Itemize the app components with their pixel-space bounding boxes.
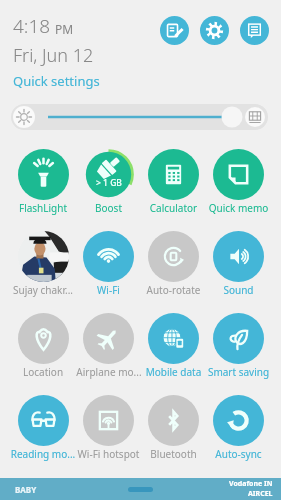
button[interactable]: Airplane mo... (76, 311, 141, 379)
button[interactable]: Mobile data (141, 311, 206, 379)
button[interactable]: Reading mo... (10, 393, 76, 461)
staticText: > 1 GB (96, 177, 122, 189)
staticText: Calculator (141, 201, 206, 215)
staticText: Reading mo... (10, 447, 76, 461)
staticText: Vodafone IN (229, 479, 273, 489)
button[interactable]: Wi-Fi (76, 229, 141, 297)
button[interactable]: Notifications (240, 16, 269, 45)
staticText: Location (10, 365, 76, 379)
button[interactable]: Sound (206, 229, 271, 297)
button[interactable]: Calculator (141, 147, 206, 215)
button[interactable]: Auto-sync (206, 393, 271, 461)
staticText: Sujay chakr... (10, 283, 76, 297)
staticText: Mobile data (141, 365, 206, 379)
button[interactable]: > 1 GB (76, 147, 141, 215)
staticText: Boost (76, 201, 141, 215)
button[interactable]: Brightness slider (11, 104, 268, 130)
button[interactable]: FlashLight (10, 147, 76, 215)
button[interactable]: Auto-rotate (141, 229, 206, 297)
staticText: Auto-rotate (141, 283, 206, 297)
button[interactable]: Auto brightness (245, 107, 265, 127)
staticText: Auto-sync (206, 447, 271, 461)
staticText: Bluetooth (141, 447, 206, 461)
button[interactable]: Quick settings (13, 72, 100, 90)
staticText: Wi-Fi hotspot (76, 447, 141, 461)
staticText: FlashLight (10, 201, 76, 215)
staticText: Wi-Fi (76, 283, 141, 297)
button[interactable]: Edit (160, 16, 189, 45)
staticText: Fri, Jun 12 (13, 43, 94, 68)
staticText: PM (55, 21, 74, 37)
staticText: 4:18 (13, 13, 51, 39)
staticText: Smart saving (206, 365, 271, 379)
button[interactable]: Drag handle (128, 487, 153, 492)
button[interactable]: Quick memo (206, 147, 271, 215)
staticText: BABY (15, 484, 37, 495)
button[interactable]: Brightness (13, 106, 35, 128)
staticText: Airplane mo... (76, 365, 141, 379)
staticText: Sound (206, 283, 271, 297)
button[interactable]: Bluetooth (141, 393, 206, 461)
staticText: AIRCEL (248, 489, 273, 499)
button[interactable]: Sujay chakr... (10, 229, 76, 297)
button[interactable]: Wi-Fi hotspot (76, 393, 141, 461)
button[interactable]: Smart saving (206, 311, 271, 379)
button[interactable]: Settings (200, 16, 229, 45)
staticText: Quick memo (206, 201, 271, 215)
button[interactable]: Location (10, 311, 76, 379)
